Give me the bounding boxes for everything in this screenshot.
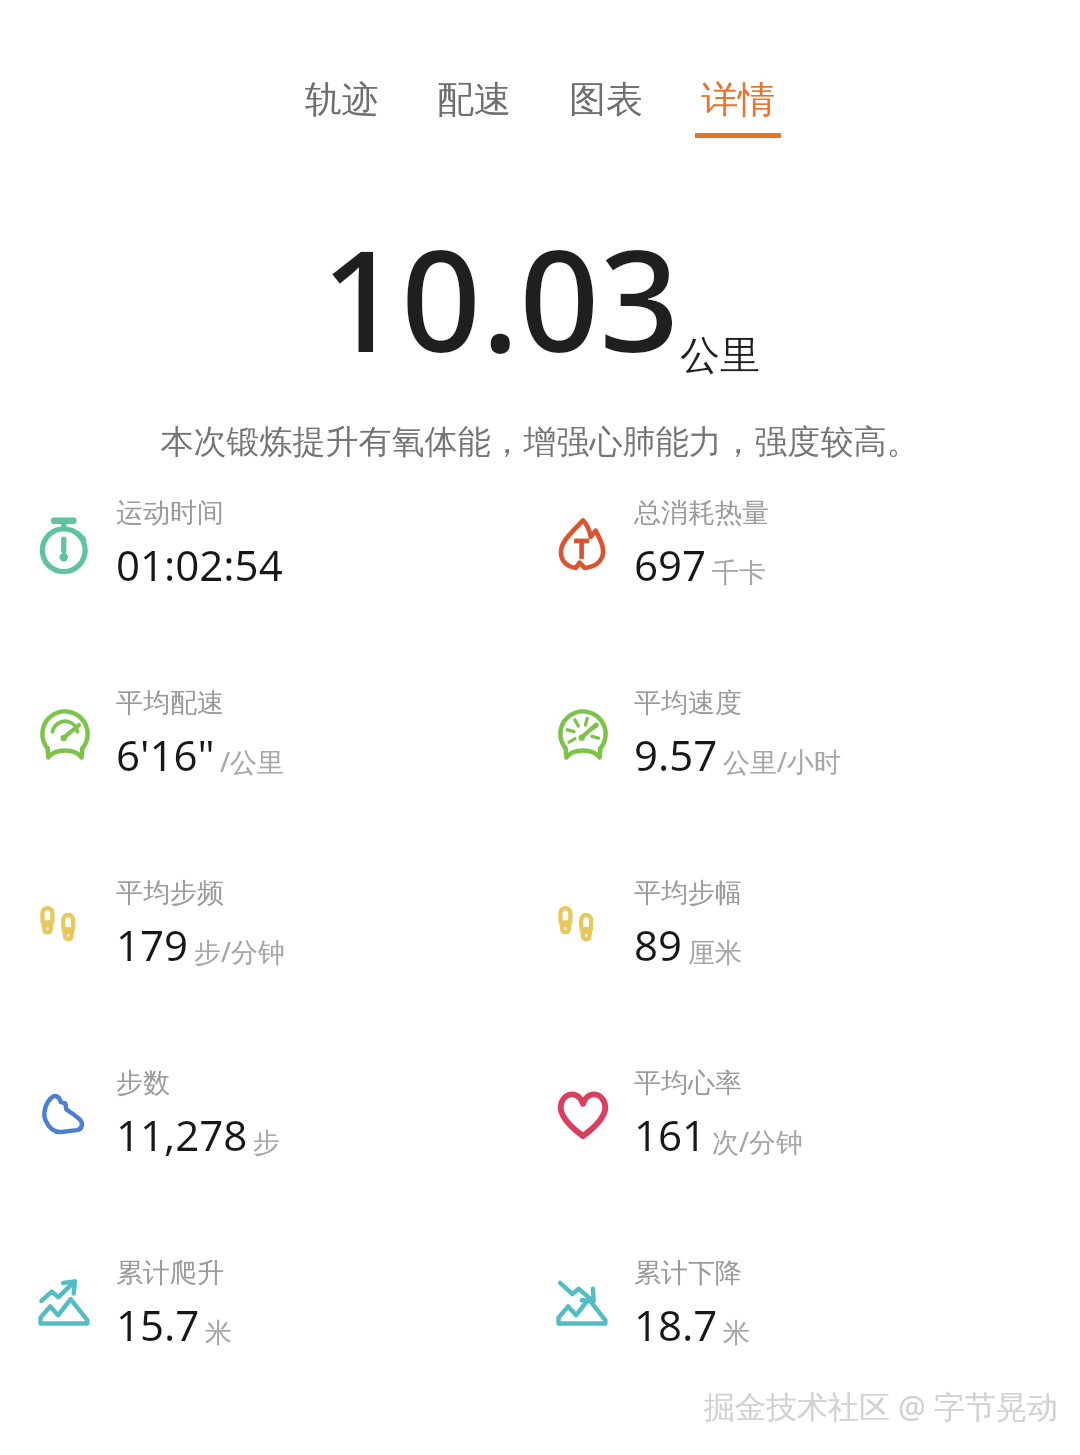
staticText: 89 — [634, 916, 683, 973]
staticText: 本次锻炼提升有氧体能，增强心肺能力，强度较高。 — [24, 421, 1056, 463]
button[interactable]: 图表 — [540, 74, 672, 140]
button[interactable]: 平均步频 — [22, 869, 286, 979]
other: 平均心率 — [540, 1059, 626, 1169]
other: 平均步频 — [22, 869, 108, 979]
staticText: 米 — [205, 1316, 232, 1350]
button[interactable]: 平均步幅 — [540, 869, 742, 979]
button[interactable]: 总消耗热量 — [540, 489, 769, 599]
button[interactable]: 运动时间 — [22, 489, 283, 599]
staticText: 10.03 — [321, 202, 680, 393]
other: 累计爬升 — [22, 1249, 108, 1359]
button[interactable]: 配速 — [408, 74, 540, 140]
staticText: 6'16" — [116, 726, 215, 783]
staticText: 千卡 — [712, 556, 766, 590]
staticText: 累计爬升 — [116, 1256, 224, 1290]
other: 累计下降 — [540, 1249, 626, 1359]
button[interactable]: 累计下降 — [540, 1249, 750, 1359]
staticText: 9.57 — [634, 726, 718, 783]
staticText: 697 — [634, 536, 707, 593]
button[interactable]: 步数 — [22, 1059, 280, 1169]
staticText: 平均步频 — [116, 876, 224, 910]
staticText: 179 — [116, 916, 189, 973]
staticText: 步 — [253, 1126, 280, 1160]
staticText: 步/分钟 — [194, 933, 286, 970]
staticText: 15.7 — [116, 1296, 200, 1353]
staticText: 公里 — [680, 330, 760, 380]
button[interactable]: 平均速度 — [540, 679, 842, 789]
staticText: 平均速度 — [634, 686, 742, 720]
other: 平均速度 — [540, 679, 626, 789]
staticText: 图表 — [569, 76, 643, 123]
button[interactable]: 累计爬升 — [22, 1249, 232, 1359]
staticText: 配速 — [437, 76, 511, 123]
other: 步数 — [22, 1059, 108, 1169]
staticText: 平均步幅 — [634, 876, 742, 910]
staticText: 01:02:54 — [116, 536, 283, 593]
button[interactable]: 详情 — [672, 74, 804, 140]
staticText: 总消耗热量 — [634, 496, 769, 530]
staticText: 详情 — [701, 76, 775, 123]
staticText: /公里 — [220, 743, 285, 780]
staticText: 掘金技术社区 @ 字节晃动 — [704, 1385, 1058, 1427]
button[interactable]: 轨迹 — [276, 74, 408, 140]
button[interactable]: 平均配速 — [22, 679, 285, 789]
staticText: 平均配速 — [116, 686, 224, 720]
staticText: 运动时间 — [116, 496, 224, 530]
other: 总消耗热量 — [540, 489, 626, 599]
staticText: 18.7 — [634, 1296, 718, 1353]
other: 平均配速 — [22, 679, 108, 789]
staticText: 161 — [634, 1106, 707, 1163]
staticText: 轨迹 — [305, 76, 379, 123]
staticText: 厘米 — [688, 936, 742, 970]
staticText: 米 — [723, 1316, 750, 1350]
staticText: 平均心率 — [634, 1066, 742, 1100]
other: 运动时间 — [22, 489, 108, 599]
staticText: 步数 — [116, 1066, 170, 1100]
staticText: 次/分钟 — [712, 1123, 804, 1160]
other: 平均步幅 — [540, 869, 626, 979]
staticText: 11,278 — [116, 1106, 248, 1163]
button[interactable]: 平均心率 — [540, 1059, 804, 1169]
staticText: 累计下降 — [634, 1256, 742, 1290]
staticText: 公里/小时 — [723, 743, 842, 780]
